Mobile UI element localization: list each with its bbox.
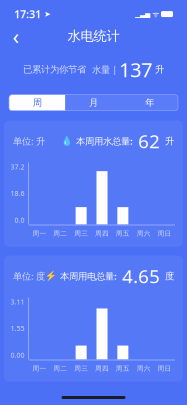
staticText: 0.0 [14, 216, 24, 225]
staticText: 周四 [95, 364, 109, 373]
staticText: 62 [133, 129, 165, 153]
staticText: ▁▃▅ [135, 10, 150, 18]
staticText: 升 [165, 135, 174, 147]
staticText: ⚡ [45, 271, 57, 281]
staticText: 周五 [116, 364, 130, 373]
staticText: 周二 [53, 364, 67, 373]
staticText: 周三 [74, 364, 88, 373]
staticText: 水电统计 [67, 28, 119, 44]
staticText: 18.6 [10, 189, 24, 198]
staticText: 周日 [158, 364, 172, 373]
staticText: 周四 [95, 229, 109, 238]
staticText: 升 [152, 64, 164, 75]
button[interactable]: Back [4, 25, 28, 47]
staticText: 周一 [32, 364, 46, 373]
staticText: 水量 | [86, 63, 119, 76]
staticText: 月 [89, 97, 98, 108]
staticText: 周 [33, 97, 42, 108]
staticText: 周日 [158, 229, 172, 238]
staticText: 周一 [32, 229, 46, 238]
button[interactable]: 年 [122, 95, 178, 111]
staticText: 单位: 升 [13, 135, 45, 147]
staticText: 本周用水总量: [73, 135, 133, 147]
staticText: 已累计为你节省 [23, 64, 86, 75]
staticText: 3.11 [10, 297, 24, 306]
staticText: 周六 [137, 364, 151, 373]
staticText: 单位: 度 [13, 270, 45, 282]
staticText: ‹ [12, 22, 19, 50]
staticText: 周二 [53, 229, 67, 238]
staticText: 1.55 [10, 324, 24, 333]
button[interactable]: 周 [9, 95, 65, 111]
staticText: 周五 [116, 229, 130, 238]
staticText: 周六 [137, 229, 151, 238]
staticText: 17:31 [14, 7, 41, 21]
staticText: 137 [119, 56, 152, 83]
staticText: ➤ [41, 9, 51, 19]
staticText: 年 [145, 97, 154, 108]
staticText: 本周用电总量: [57, 270, 117, 282]
button[interactable]: 月 [65, 95, 122, 111]
staticText: ᯤ [150, 9, 161, 19]
staticText: 度 [165, 270, 174, 282]
staticText: 周三 [74, 229, 88, 238]
staticText: 4.65 [117, 264, 165, 288]
staticText: 37.2 [10, 162, 24, 171]
staticText: 0.00 [10, 351, 24, 359]
staticText: 💧 [61, 136, 73, 146]
